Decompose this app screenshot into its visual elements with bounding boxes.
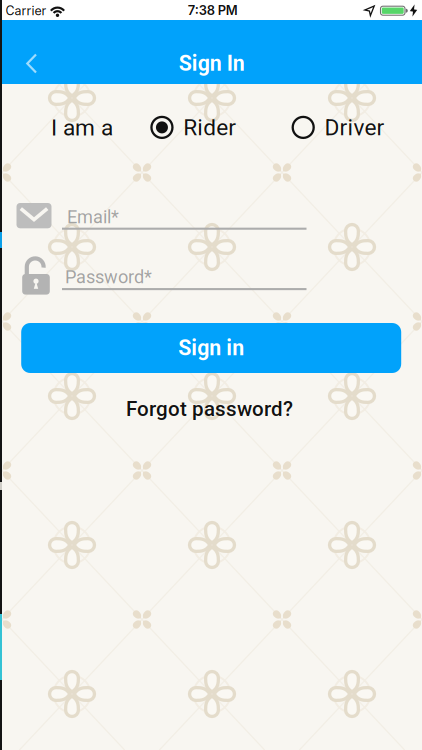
staticText: Sign In xyxy=(179,51,245,76)
staticText: Carrier xyxy=(5,3,46,18)
staticText: Driver xyxy=(324,114,384,141)
button[interactable]: Driver xyxy=(291,114,384,141)
staticText: I am a xyxy=(51,114,113,141)
button[interactable]: Password xyxy=(62,262,306,292)
button[interactable]: Back xyxy=(9,41,53,85)
button[interactable]: Email xyxy=(62,202,306,232)
staticText: Rider xyxy=(183,114,236,141)
button[interactable]: Sign in xyxy=(21,323,401,373)
button[interactable]: Rider xyxy=(150,114,236,141)
staticText: Email* xyxy=(67,206,119,228)
staticText: Password* xyxy=(65,266,152,288)
button[interactable]: Forgot password? xyxy=(126,397,293,421)
staticText: Forgot password? xyxy=(126,397,293,421)
staticText: Sign in xyxy=(178,335,244,360)
staticText: 7:38 PM xyxy=(188,2,238,18)
